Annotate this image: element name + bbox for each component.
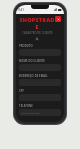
staticText: CADASTRO DE CLIENTE (22, 31, 53, 35)
staticText: 9:41 (18, 8, 24, 12)
staticText: ENDEREÇO DE EMAIL (19, 74, 48, 78)
button[interactable]: (00) 00000-0000 (19, 109, 61, 116)
staticText: (00) 00000-0000 (21, 111, 40, 114)
staticText: TELEFONE (19, 104, 33, 108)
staticText: PRODUTO (19, 44, 33, 48)
staticText: CPF (19, 89, 25, 93)
staticText: SHOPSTRADE (19, 16, 55, 30)
button[interactable]: Close (55, 16, 61, 22)
staticText: NOME DO CLIENTE (19, 59, 45, 63)
